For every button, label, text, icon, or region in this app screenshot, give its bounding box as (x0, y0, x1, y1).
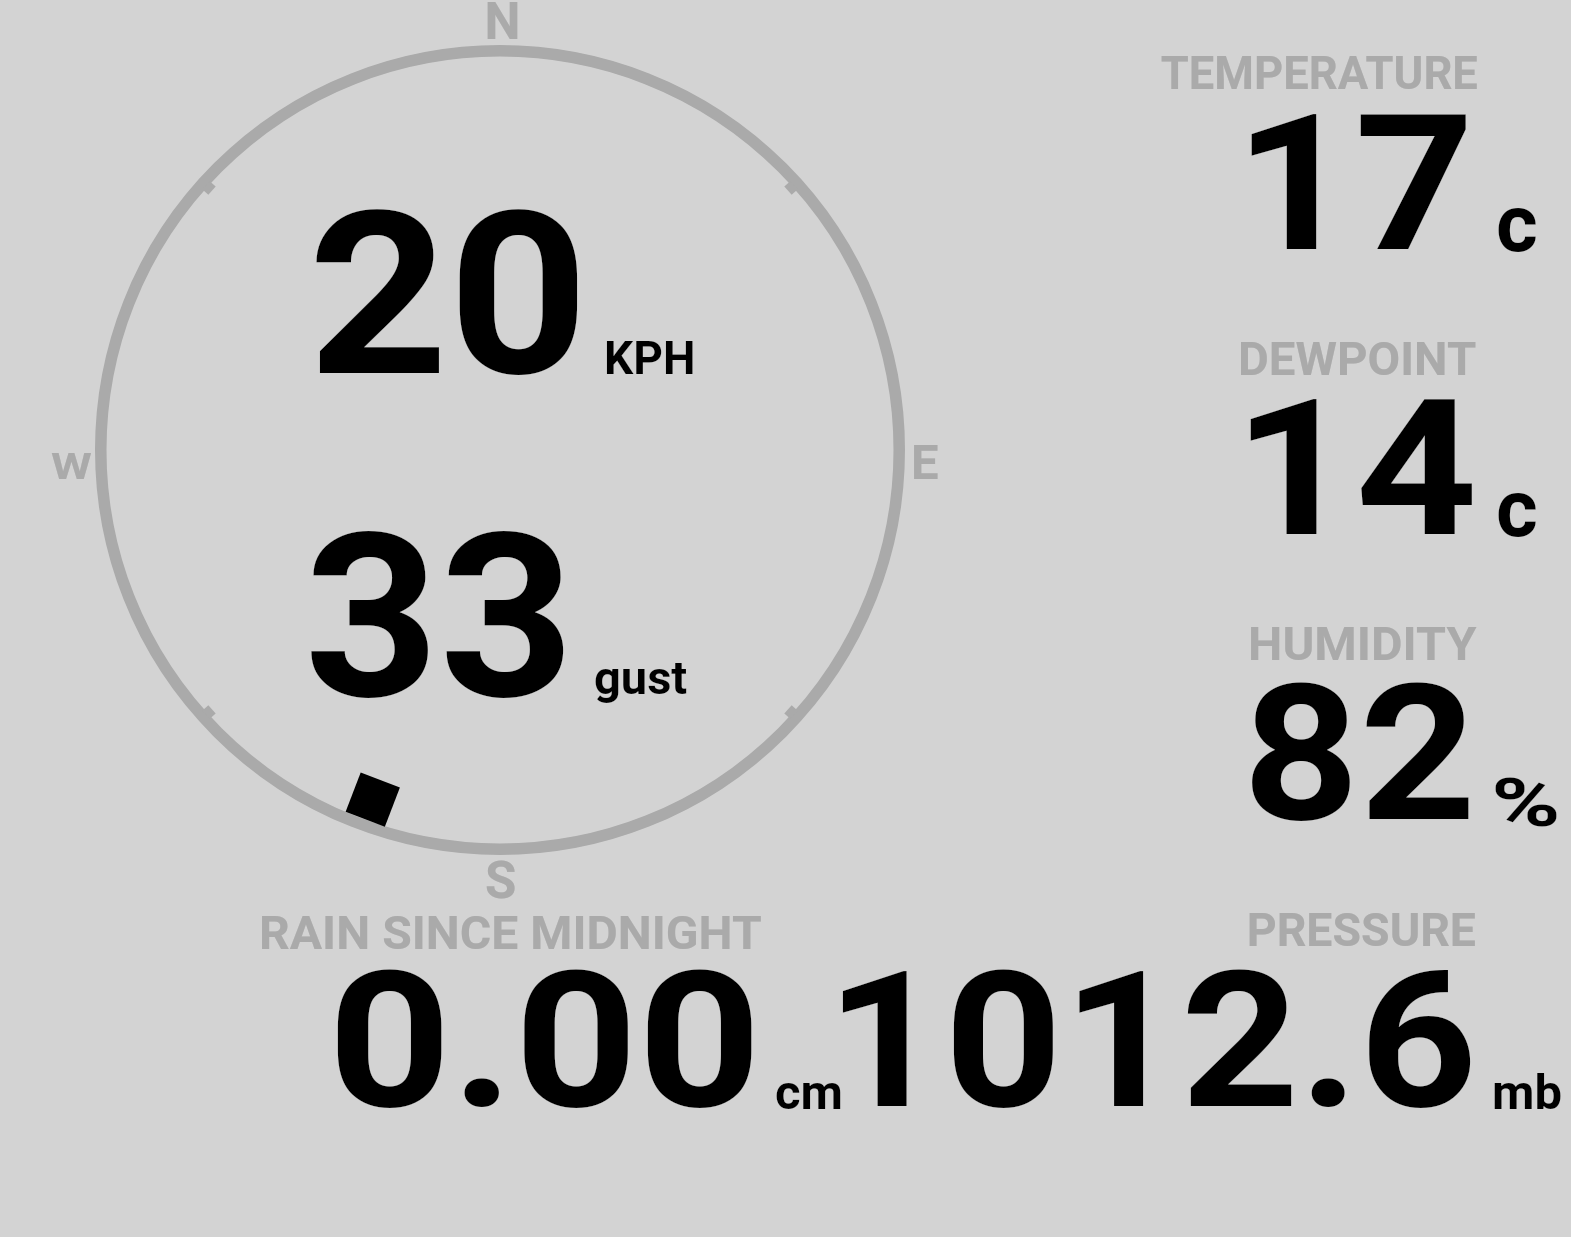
button[interactable]: Dewpoint 14 c (1110, 310, 1570, 560)
button[interactable]: Pressure 1012.6 mb (860, 890, 1560, 1130)
button[interactable]: Rain since midnight 0.00 cm (250, 890, 850, 1130)
button[interactable]: Temperature 17 c (1110, 30, 1570, 280)
button[interactable]: Wind speed 20 KPH (80, 30, 930, 480)
button[interactable]: Wind gust 33 KPH (80, 480, 930, 880)
button[interactable]: Humidity 82 % (1110, 595, 1570, 845)
